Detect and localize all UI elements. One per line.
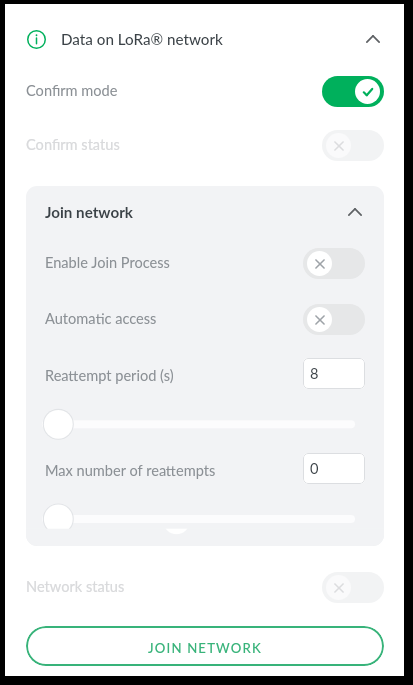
staticText: 8	[310, 365, 319, 383]
button[interactable]: Automatic access	[303, 304, 365, 335]
button[interactable]: Network status	[5, 571, 404, 603]
staticText: Enable Join Process	[45, 254, 170, 272]
button[interactable]: 8	[303, 358, 365, 389]
button[interactable]	[26, 186, 384, 546]
staticText: Join network	[45, 203, 133, 221]
button[interactable]: Join network	[26, 196, 384, 228]
staticText: Max number of reattempts	[45, 462, 216, 480]
staticText: Reattempt period (s)	[45, 367, 174, 385]
button[interactable]: JOIN NETWORK	[26, 626, 384, 666]
staticText: Data on LoRa® network	[61, 30, 223, 48]
staticText: Network status	[26, 578, 125, 596]
button[interactable]: 0	[303, 453, 365, 484]
button[interactable]: Enable Join Process	[303, 248, 365, 279]
staticText: Confirm status	[26, 136, 120, 154]
button[interactable]: Enable Join Process	[26, 247, 384, 279]
staticText: Automatic access	[45, 310, 157, 328]
staticText: 0	[310, 460, 319, 478]
button[interactable]: Confirm mode	[322, 76, 384, 107]
button[interactable]: Confirm status	[322, 130, 384, 161]
button[interactable]: Data on LoRa® network	[5, 19, 404, 59]
button[interactable]: Automatic access	[26, 303, 384, 335]
button[interactable]: Network status	[322, 572, 384, 603]
staticText: JOIN NETWORK	[148, 640, 262, 656]
staticText: Confirm mode	[26, 82, 118, 100]
button[interactable]: Confirm status	[5, 129, 404, 161]
button[interactable]: Confirm mode	[5, 75, 404, 107]
